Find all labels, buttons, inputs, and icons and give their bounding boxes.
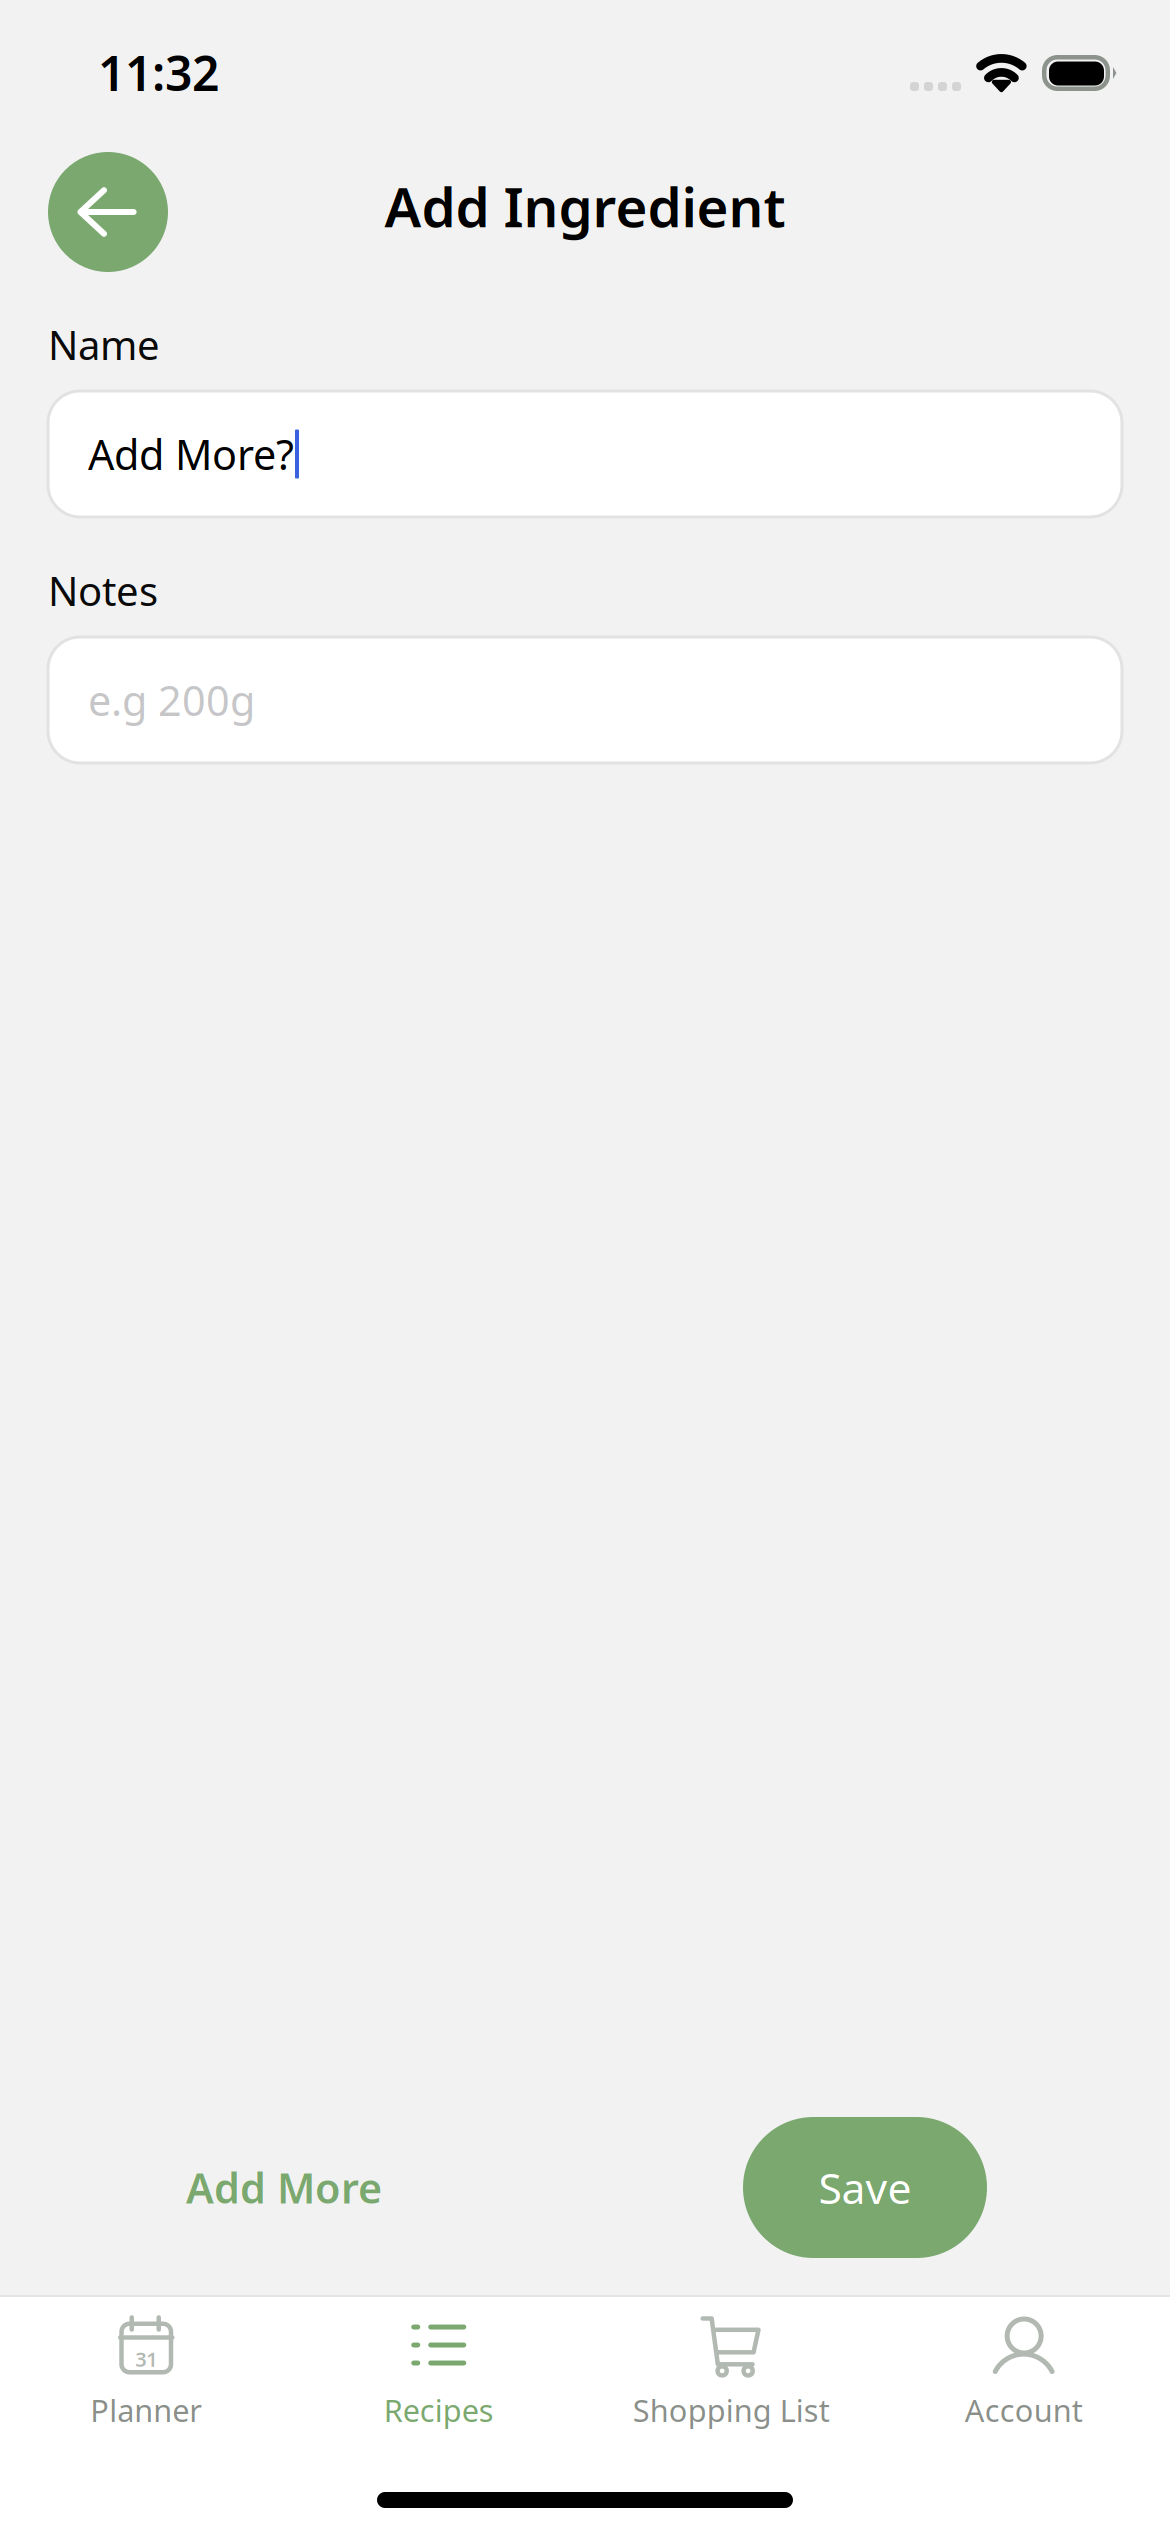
staticText: Planner (90, 2390, 202, 2430)
button[interactable]: Add More (169, 2117, 399, 2258)
staticText: Add Ingredient (384, 170, 785, 242)
button[interactable]: Add More? (48, 391, 1122, 517)
staticText: 11:32 (98, 41, 219, 104)
button[interactable]: Recipes (292, 2297, 585, 2457)
staticText: Add More? (88, 427, 294, 481)
button[interactable]: Shopping List (585, 2297, 877, 2457)
staticText: Save (818, 2159, 911, 2216)
button[interactable]: e.g 200g (48, 637, 1122, 763)
staticText: Account (965, 2390, 1083, 2430)
staticText: Shopping List (633, 2390, 830, 2430)
staticText: e.g 200g (88, 673, 255, 727)
button[interactable]: 31 (0, 2297, 292, 2457)
staticText: Name (48, 318, 160, 371)
staticText: 31 (135, 2346, 157, 2372)
button[interactable]: Save (743, 2117, 987, 2258)
staticText: Add More (186, 2160, 382, 2215)
button[interactable]: Back (48, 152, 168, 272)
staticText: Recipes (384, 2390, 494, 2430)
button[interactable]: Account (877, 2297, 1170, 2457)
staticText: Notes (48, 564, 158, 617)
